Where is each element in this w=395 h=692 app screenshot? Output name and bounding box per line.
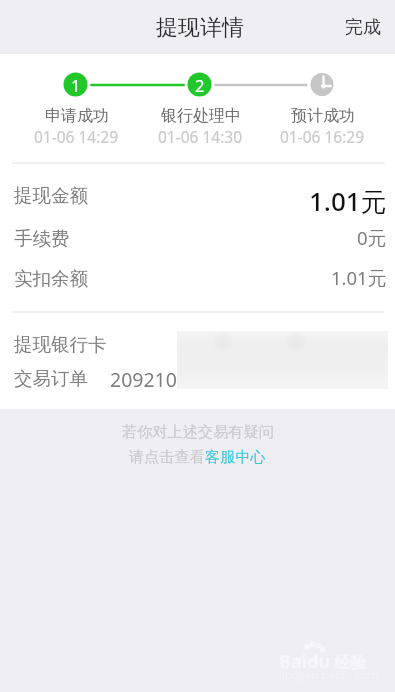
staticText: 预计成功 — [291, 106, 355, 126]
staticText: 实扣余额 — [14, 267, 88, 290]
button[interactable]: 完成 — [327, 4, 395, 51]
staticText: 经验 — [334, 653, 366, 673]
staticText: 请点击查看 — [129, 447, 205, 466]
staticText: 交易订单 — [14, 367, 88, 390]
button[interactable] — [0, 326, 395, 362]
staticText: 1 — [71, 74, 81, 94]
button[interactable] — [0, 177, 395, 221]
staticText: 若你对上述交易有疑问 — [122, 422, 274, 441]
other: Withdrawal progress — [0, 0, 395, 692]
staticText: 1.01元 — [331, 265, 387, 290]
staticText: 提现金额 — [14, 184, 88, 207]
staticText: 01-06 16:29 — [280, 126, 365, 147]
button[interactable] — [0, 261, 395, 301]
staticText: 2 — [195, 74, 205, 94]
staticText: 1.01元 — [309, 183, 387, 219]
staticText: 客服中心 — [205, 447, 266, 466]
staticText: 申请成功 — [45, 106, 109, 126]
staticText: Baidu — [279, 649, 331, 674]
staticText: 0元 — [357, 225, 387, 250]
staticText: 提现银行卡 — [14, 333, 107, 356]
button[interactable] — [0, 362, 395, 400]
staticText: 完成 — [345, 16, 381, 39]
button[interactable]: 客服中心 — [205, 447, 266, 466]
button[interactable] — [0, 221, 395, 261]
staticText: 01-06 14:29 — [34, 126, 119, 147]
staticText: 提现详情 — [156, 14, 244, 42]
staticText: 手续费 — [14, 227, 70, 250]
staticText: 银行处理中 — [161, 106, 241, 126]
staticText: 01-06 14:30 — [158, 126, 243, 147]
staticText: 20921010 — [110, 366, 200, 393]
